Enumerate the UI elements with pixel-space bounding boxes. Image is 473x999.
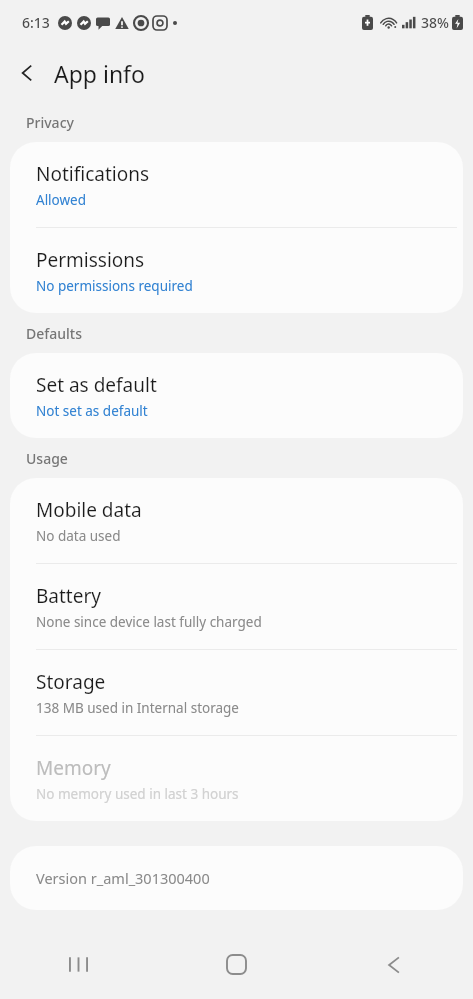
staticText: No data used [36, 527, 121, 545]
button[interactable]: Back [0, 46, 54, 100]
staticText: Usage [26, 449, 68, 468]
button[interactable]: Notifications [10, 142, 463, 227]
staticText: 138 MB used in Internal storage [36, 699, 239, 717]
staticText: No permissions required [36, 277, 193, 295]
button[interactable]: Set as default [10, 353, 463, 438]
staticText: Memory [36, 755, 111, 781]
button[interactable]: Back [315, 930, 473, 999]
staticText: 6:13 [22, 13, 50, 32]
staticText: Battery [36, 583, 101, 609]
button[interactable]: Mobile data [10, 478, 463, 563]
button[interactable]: Battery [10, 564, 463, 649]
staticText: Permissions [36, 247, 145, 273]
button[interactable]: Home [157, 930, 315, 999]
staticText: Set as default [36, 372, 157, 398]
staticText: 38% [421, 13, 449, 32]
button[interactable]: Recents [0, 930, 157, 999]
staticText: Allowed [36, 191, 87, 209]
staticText: Version r_aml_301300400 [36, 868, 210, 888]
staticText: Notifications [36, 161, 150, 187]
staticText: Mobile data [36, 497, 142, 523]
staticText: Not set as default [36, 402, 148, 420]
button[interactable]: Storage [10, 650, 463, 735]
staticText: Defaults [26, 324, 82, 343]
staticText: None since device last fully charged [36, 613, 262, 631]
button[interactable]: Permissions [10, 228, 463, 313]
staticText: No memory used in last 3 hours [36, 785, 239, 803]
staticText: Storage [36, 669, 106, 695]
staticText: App info [54, 58, 145, 89]
staticText: Privacy [26, 113, 74, 132]
